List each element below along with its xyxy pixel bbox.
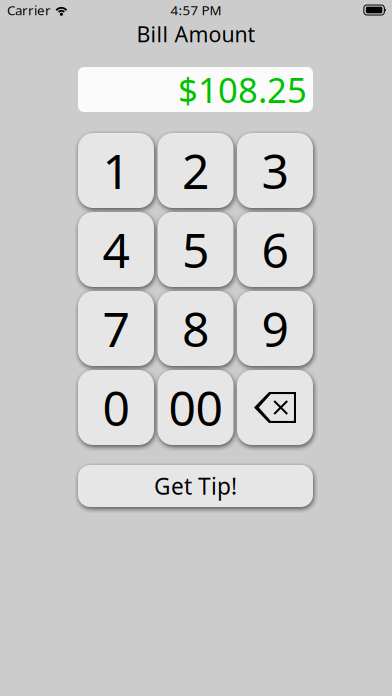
staticText: Bill Amount [136,20,255,48]
staticText: $108.25 [178,66,307,112]
button[interactable]: Delete [237,370,313,445]
staticText: 00 [168,376,222,439]
button[interactable]: Get Tip! [78,465,313,507]
button[interactable]: 8 [157,291,233,366]
staticText: 0 [102,376,129,439]
button[interactable]: 6 [237,212,313,287]
button[interactable]: 0 [78,370,154,445]
staticText: 3 [261,139,288,202]
staticText: 8 [182,297,209,360]
button[interactable]: 3 [237,133,313,208]
staticText: 1 [102,139,129,202]
button[interactable]: 00 [157,370,233,445]
button[interactable]: 9 [237,291,313,366]
staticText: 6 [261,218,288,281]
staticText: 4:57 PM [170,1,221,19]
staticText: 2 [182,139,209,202]
button[interactable]: 7 [78,291,154,366]
button[interactable]: 1 [78,133,154,208]
staticText: 7 [102,297,129,360]
staticText: Carrier [7,1,51,19]
staticText: 5 [182,218,209,281]
staticText: 9 [261,297,288,360]
staticText: 4 [102,218,129,281]
button[interactable]: 4 [78,212,154,287]
staticText: Get Tip! [154,471,237,501]
button[interactable]: 5 [157,212,233,287]
button[interactable]: 2 [157,133,233,208]
